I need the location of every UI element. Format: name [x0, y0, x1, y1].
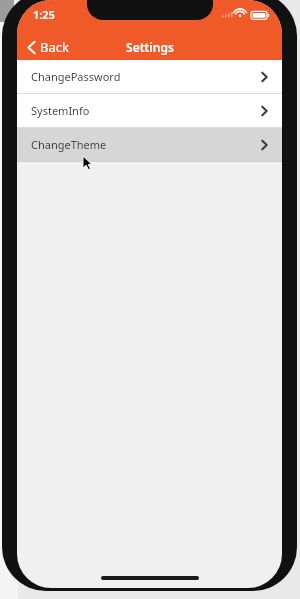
button[interactable]: ChangeTheme	[17, 128, 282, 161]
other: Open ChangePassword	[261, 71, 268, 83]
other: Open ChangeTheme	[261, 139, 268, 151]
staticText: Back	[40, 38, 69, 56]
staticText: ChangeTheme	[31, 137, 261, 152]
button[interactable]: Back	[23, 34, 77, 60]
staticText: ChangePassword	[31, 69, 261, 84]
staticText: 1:25	[33, 7, 55, 22]
button[interactable]: SystemInfo	[17, 94, 282, 127]
staticText: SystemInfo	[31, 103, 261, 118]
other: Open SystemInfo	[261, 105, 268, 117]
staticText: Settings	[126, 39, 174, 55]
button[interactable]: ChangePassword	[17, 60, 282, 93]
